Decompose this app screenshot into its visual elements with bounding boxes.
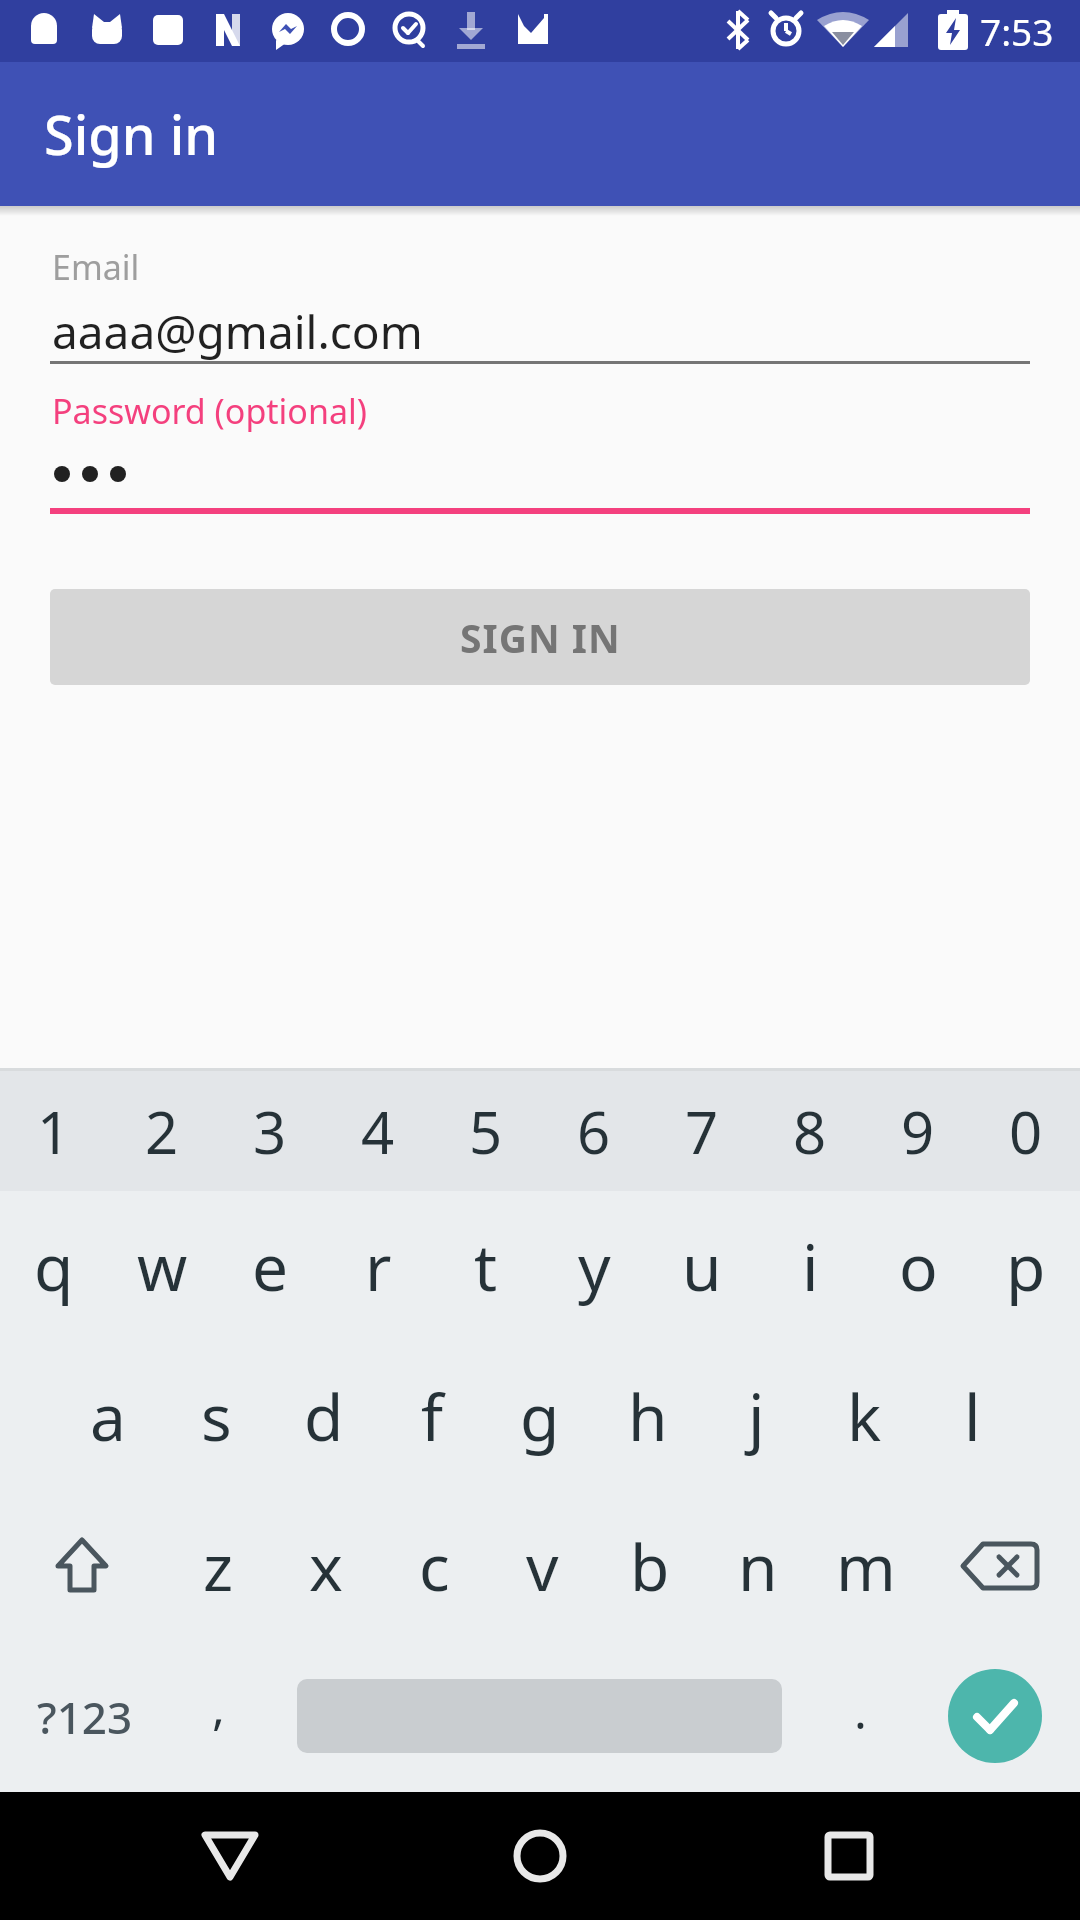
button[interactable] bbox=[794, 1822, 904, 1890]
staticText: 6 bbox=[577, 1092, 611, 1171]
staticText: q bbox=[34, 1223, 74, 1310]
button[interactable]: a bbox=[54, 1341, 162, 1491]
staticText: h bbox=[628, 1373, 668, 1460]
button[interactable]: q bbox=[0, 1191, 108, 1341]
staticText: x bbox=[309, 1523, 343, 1610]
button[interactable]: 8 bbox=[756, 1071, 864, 1191]
staticText: Sign in bbox=[44, 97, 219, 171]
staticText: f bbox=[421, 1373, 444, 1460]
button[interactable]: d bbox=[270, 1341, 378, 1491]
button[interactable]: p bbox=[972, 1191, 1080, 1341]
staticText: u bbox=[682, 1223, 722, 1310]
staticText: p bbox=[1006, 1223, 1046, 1310]
button[interactable]: e bbox=[216, 1191, 324, 1341]
button[interactable]: s bbox=[162, 1341, 270, 1491]
button[interactable]: 7 bbox=[648, 1071, 756, 1191]
staticText: y bbox=[578, 1223, 611, 1310]
staticText: j bbox=[748, 1373, 765, 1460]
button[interactable]: y bbox=[540, 1191, 648, 1341]
staticText: d bbox=[304, 1373, 344, 1460]
staticText: ?123 bbox=[37, 1687, 133, 1747]
staticText: e bbox=[252, 1223, 289, 1310]
staticText: Email bbox=[52, 244, 140, 290]
button[interactable]: 1 bbox=[0, 1071, 108, 1191]
staticText: i bbox=[802, 1223, 819, 1310]
button[interactable]: 9 bbox=[864, 1071, 972, 1191]
staticText: 0 bbox=[1009, 1092, 1043, 1171]
staticText: l bbox=[964, 1373, 981, 1460]
button[interactable]: i bbox=[756, 1191, 864, 1341]
staticText: 9 bbox=[901, 1092, 935, 1171]
staticText: 2 bbox=[145, 1092, 179, 1171]
button[interactable] bbox=[485, 1822, 595, 1890]
button[interactable]: 4 bbox=[324, 1071, 432, 1191]
staticText: 1 bbox=[37, 1092, 71, 1171]
button[interactable]: f bbox=[378, 1341, 486, 1491]
button[interactable]: x bbox=[272, 1491, 380, 1641]
button[interactable]: 0 bbox=[972, 1071, 1080, 1191]
button[interactable]: k bbox=[810, 1341, 918, 1491]
button[interactable]: j bbox=[702, 1341, 810, 1491]
button[interactable]: g bbox=[486, 1341, 594, 1491]
button[interactable]: c bbox=[380, 1491, 488, 1641]
staticText: v bbox=[526, 1523, 559, 1610]
button[interactable]: n bbox=[704, 1491, 812, 1641]
staticText: a bbox=[90, 1373, 126, 1460]
staticText: 5 bbox=[469, 1092, 503, 1171]
staticText: c bbox=[419, 1523, 450, 1610]
staticText: b bbox=[630, 1523, 670, 1610]
button[interactable]: 3 bbox=[216, 1071, 324, 1191]
button[interactable]: 5 bbox=[432, 1071, 540, 1191]
button[interactable]: , bbox=[178, 1641, 258, 1792]
button[interactable]: . bbox=[820, 1641, 900, 1792]
staticText: g bbox=[520, 1373, 560, 1460]
button[interactable]: l bbox=[918, 1341, 1026, 1491]
staticText: 7:53 bbox=[980, 6, 1054, 56]
staticText: 3 bbox=[253, 1092, 287, 1171]
button[interactable]: SIGN IN bbox=[50, 589, 1030, 685]
staticText: k bbox=[847, 1373, 882, 1460]
button[interactable] bbox=[948, 1669, 1042, 1763]
button[interactable]: 2 bbox=[108, 1071, 216, 1191]
button[interactable]: h bbox=[594, 1341, 702, 1491]
button[interactable]: r bbox=[324, 1191, 432, 1341]
button[interactable]: m bbox=[812, 1491, 920, 1641]
staticText: r bbox=[365, 1223, 392, 1310]
staticText: m bbox=[836, 1523, 896, 1610]
button[interactable]: v bbox=[488, 1491, 596, 1641]
staticText: n bbox=[738, 1523, 778, 1610]
button[interactable]: t bbox=[432, 1191, 540, 1341]
staticText: aaaa@gmail.com bbox=[52, 300, 423, 363]
staticText: , bbox=[212, 1674, 225, 1739]
button[interactable] bbox=[0, 1491, 164, 1641]
staticText: 7 bbox=[685, 1092, 719, 1171]
staticText: 4 bbox=[361, 1092, 395, 1171]
button[interactable]: u bbox=[648, 1191, 756, 1341]
staticText: s bbox=[201, 1373, 232, 1460]
button[interactable] bbox=[175, 1822, 285, 1890]
staticText: Password (optional) bbox=[52, 388, 367, 434]
staticText: 8 bbox=[793, 1092, 827, 1171]
staticText: . bbox=[854, 1678, 867, 1743]
button[interactable]: ?123 bbox=[15, 1641, 155, 1792]
staticText: SIGN IN bbox=[460, 611, 621, 664]
button[interactable]: z bbox=[164, 1491, 272, 1641]
staticText: o bbox=[899, 1223, 938, 1310]
button[interactable]: w bbox=[108, 1191, 216, 1341]
button[interactable]: b bbox=[596, 1491, 704, 1641]
staticText: t bbox=[474, 1223, 498, 1310]
staticText: w bbox=[137, 1223, 188, 1310]
button[interactable]: 6 bbox=[540, 1071, 648, 1191]
button[interactable] bbox=[920, 1491, 1080, 1641]
button[interactable]: o bbox=[864, 1191, 972, 1341]
staticText: z bbox=[203, 1523, 234, 1610]
